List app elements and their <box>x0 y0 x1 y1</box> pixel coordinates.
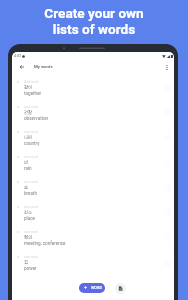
button[interactable]: More options <box>160 60 174 74</box>
staticText: 같이 <box>24 84 33 90</box>
button[interactable]: third word <box>12 74 174 99</box>
staticText: rain <box>24 166 32 171</box>
staticText: new word <box>24 255 38 259</box>
button[interactable]: new word <box>12 174 174 199</box>
staticText: new word <box>24 130 38 134</box>
staticText: WORD <box>91 286 102 290</box>
staticText: new word <box>24 230 38 234</box>
staticText: new word <box>24 205 38 209</box>
staticText: country <box>24 141 40 146</box>
staticText: new word <box>24 180 38 184</box>
staticText: power <box>24 266 37 271</box>
button[interactable]: new word <box>12 124 174 149</box>
staticText: new word <box>24 105 38 109</box>
staticText: breath <box>24 191 38 196</box>
staticText: 숨 <box>24 184 29 190</box>
staticText: third word <box>24 80 39 84</box>
staticText: 회의 <box>24 234 33 240</box>
button[interactable]: WORD <box>79 283 105 293</box>
staticText: place <box>24 216 36 221</box>
staticText: 장소 <box>24 209 33 215</box>
staticText: 관찰 <box>24 109 33 115</box>
button[interactable]: new word <box>12 249 174 274</box>
staticText: new word <box>24 155 38 159</box>
button[interactable]: Import from file <box>116 284 125 293</box>
button[interactable]: new word <box>12 99 174 124</box>
button[interactable]: new word <box>12 149 174 174</box>
button[interactable]: new word <box>12 224 174 249</box>
button[interactable]: new word <box>12 199 174 224</box>
staticText: 나라 <box>24 134 33 140</box>
staticText: My words <box>34 64 53 69</box>
staticText: together <box>24 91 42 96</box>
button[interactable]: Back <box>14 60 30 74</box>
staticText: 힘 <box>24 259 29 265</box>
staticText: 4:03 <box>14 54 21 58</box>
staticText: observation <box>24 116 49 121</box>
staticText: 비 <box>24 159 29 165</box>
staticText: Create your own lists of words <box>0 5 188 37</box>
staticText: meeting, conference <box>24 241 66 246</box>
